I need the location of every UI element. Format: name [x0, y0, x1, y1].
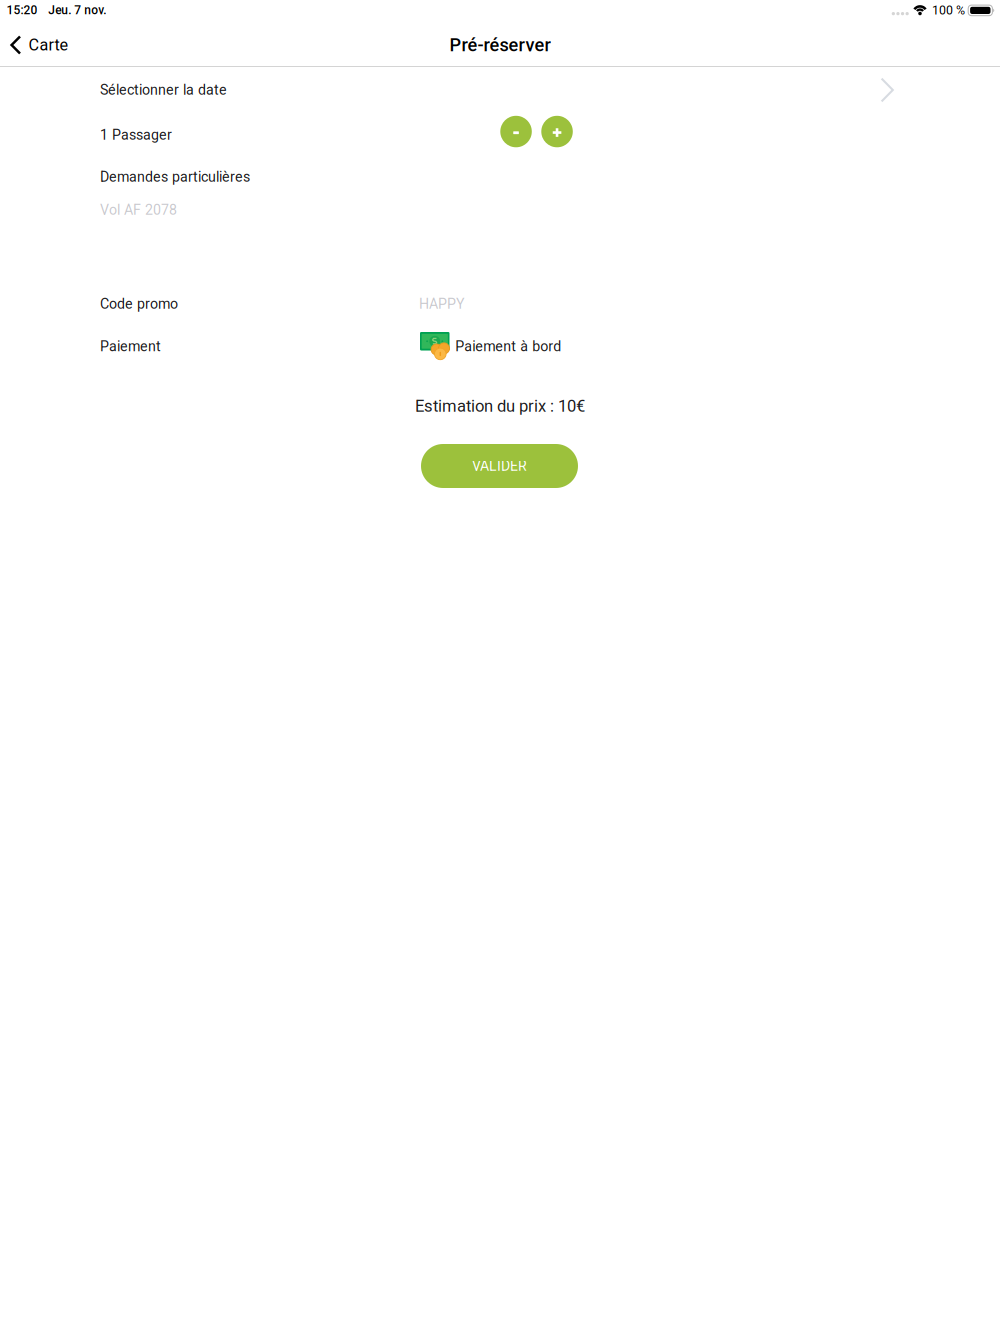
button[interactable]: Retirer un passager [500, 116, 532, 147]
staticText: Demandes particulières [100, 169, 250, 185]
staticText: Code promo [100, 296, 178, 312]
staticText: HAPPY [419, 296, 465, 312]
staticText: Jeu. 7 nov. [48, 3, 106, 17]
staticText: Vol AF 2078 [100, 202, 177, 218]
button[interactable]: VALIDER [421, 444, 578, 488]
staticText: 15:20 [6, 3, 37, 17]
staticText: 100 % [932, 3, 965, 17]
button[interactable]: Paiement à bord [420, 332, 561, 361]
staticText: Estimation du prix : 10€ [415, 396, 585, 416]
button[interactable]: Ajouter un passager [541, 116, 573, 147]
button[interactable]: Sélectionner la date [0, 70, 1000, 110]
staticText: Paiement [100, 338, 161, 355]
staticText: VALIDER [472, 458, 527, 474]
staticText: 1 Passager [100, 127, 172, 143]
staticText: Paiement à bord [455, 338, 561, 355]
staticText: Sélectionner la date [100, 82, 227, 98]
staticText: Carte [28, 35, 68, 54]
button[interactable]: Carte [0, 25, 82, 65]
staticText: Pré-réserver [449, 34, 550, 56]
